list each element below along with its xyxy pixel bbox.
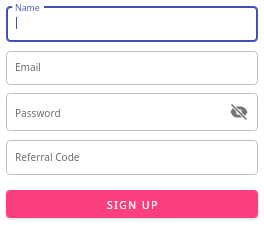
button[interactable]: Toggle password visibility — [228, 101, 250, 123]
staticText: SIGN UP — [107, 198, 159, 212]
staticText: Name — [15, 2, 40, 14]
staticText: Password — [15, 106, 61, 120]
staticText: Email — [15, 60, 41, 74]
button[interactable]: Referral Code — [6, 140, 258, 175]
staticText: Referral Code — [15, 150, 80, 164]
button[interactable]: Name — [6, 6, 258, 42]
button[interactable]: SIGN UP — [6, 190, 258, 218]
button[interactable]: Email — [6, 51, 258, 85]
button[interactable]: Password — [6, 93, 258, 131]
